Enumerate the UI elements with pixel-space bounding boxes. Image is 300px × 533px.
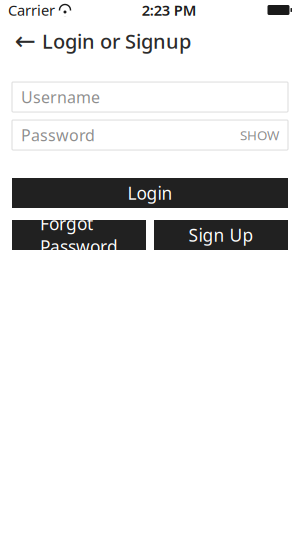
staticText: Forgot Password <box>40 212 118 258</box>
staticText: Carrier <box>8 0 55 20</box>
staticText: Sign Up <box>188 223 253 246</box>
button[interactable]: Back <box>8 21 42 61</box>
staticText: Password <box>21 124 95 146</box>
staticText: Login or Signup <box>42 28 191 54</box>
button[interactable]: Login or Signup <box>42 21 191 61</box>
staticText: Username <box>21 86 100 108</box>
staticText: SHOW <box>240 126 279 144</box>
staticText: 2:23 PM <box>142 0 197 20</box>
button[interactable]: Login <box>12 178 288 208</box>
button[interactable]: Forgot Password <box>12 220 146 250</box>
button[interactable]: Username <box>12 82 288 112</box>
staticText: ← <box>14 27 35 55</box>
button[interactable]: Sign Up <box>154 220 288 250</box>
button[interactable]: Password <box>12 120 288 150</box>
staticText: Login <box>127 181 172 204</box>
